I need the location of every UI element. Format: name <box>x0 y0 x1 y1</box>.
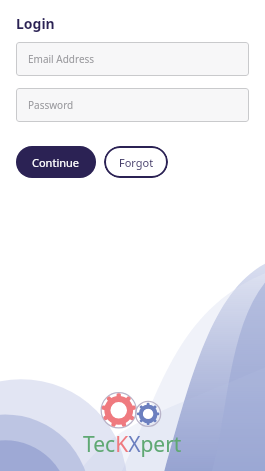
staticText: Password <box>28 98 74 112</box>
button[interactable]: Email Address <box>16 42 249 76</box>
staticText: Login <box>16 14 55 33</box>
staticText: TecKXpert <box>83 430 182 459</box>
staticText: Continue <box>32 155 80 170</box>
staticText: Email Address <box>28 52 95 66</box>
staticText: Forgot <box>119 155 154 170</box>
button[interactable]: Continue <box>16 146 96 178</box>
button[interactable]: Password <box>16 88 249 122</box>
button[interactable]: Forgot <box>104 146 168 178</box>
